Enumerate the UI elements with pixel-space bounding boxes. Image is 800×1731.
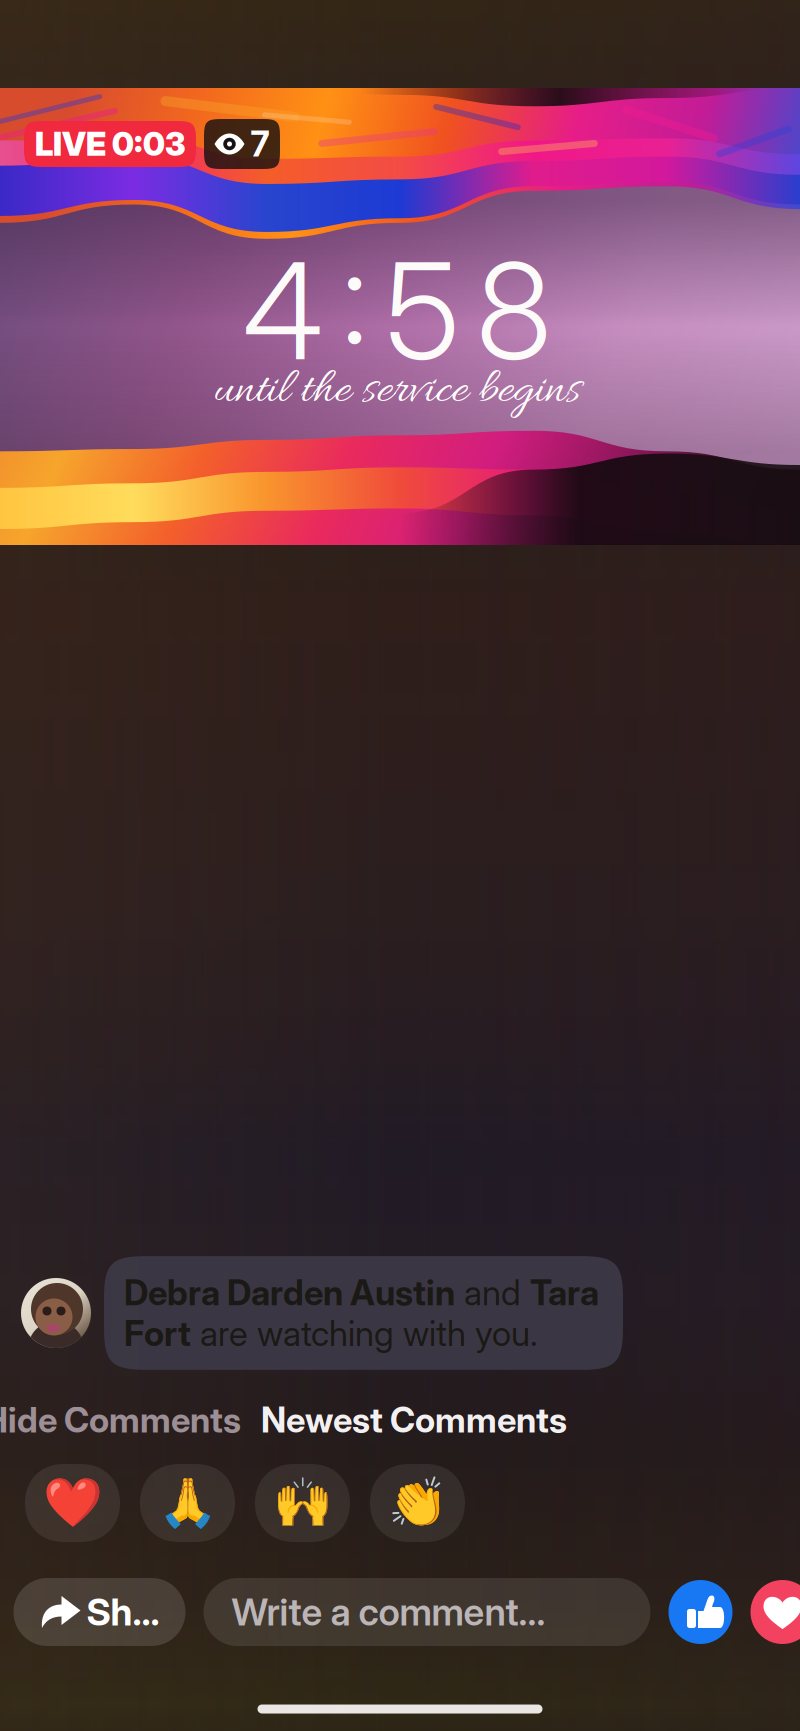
button[interactable]: React xyxy=(25,1464,120,1542)
button[interactable]: Like xyxy=(668,1580,732,1644)
button[interactable]: Viewers xyxy=(204,119,280,169)
staticText: LIVE 0:03 xyxy=(35,125,185,163)
staticText: Sh... xyxy=(86,1589,159,1635)
button[interactable]: React xyxy=(370,1464,465,1542)
button[interactable]: React xyxy=(255,1464,350,1542)
staticText: Write a comment... xyxy=(231,1589,545,1635)
staticText: Debra Darden Austin and Tara Fort are wa… xyxy=(124,1272,599,1354)
button[interactable]: LIVE 0:03 xyxy=(24,121,196,167)
staticText: 4:58 xyxy=(242,230,551,391)
button[interactable]: Love xyxy=(750,1580,800,1644)
staticText: 7 xyxy=(250,123,269,165)
button[interactable]: Newest Comments xyxy=(261,1399,567,1441)
staticText: ❤️ xyxy=(42,1476,102,1530)
staticText: 🙏 xyxy=(157,1476,217,1530)
button[interactable]: Sh... xyxy=(13,1578,185,1646)
button[interactable]: Hide Comments xyxy=(0,1399,241,1441)
staticText: 👏 xyxy=(387,1476,447,1530)
staticText: Newest Comments xyxy=(261,1399,567,1441)
button[interactable]: React xyxy=(140,1464,235,1542)
staticText: 🙌 xyxy=(272,1476,332,1530)
button[interactable]: Write a comment... xyxy=(203,1578,650,1646)
staticText: until the service begins xyxy=(213,359,580,423)
staticText: Hide Comments xyxy=(0,1399,241,1441)
